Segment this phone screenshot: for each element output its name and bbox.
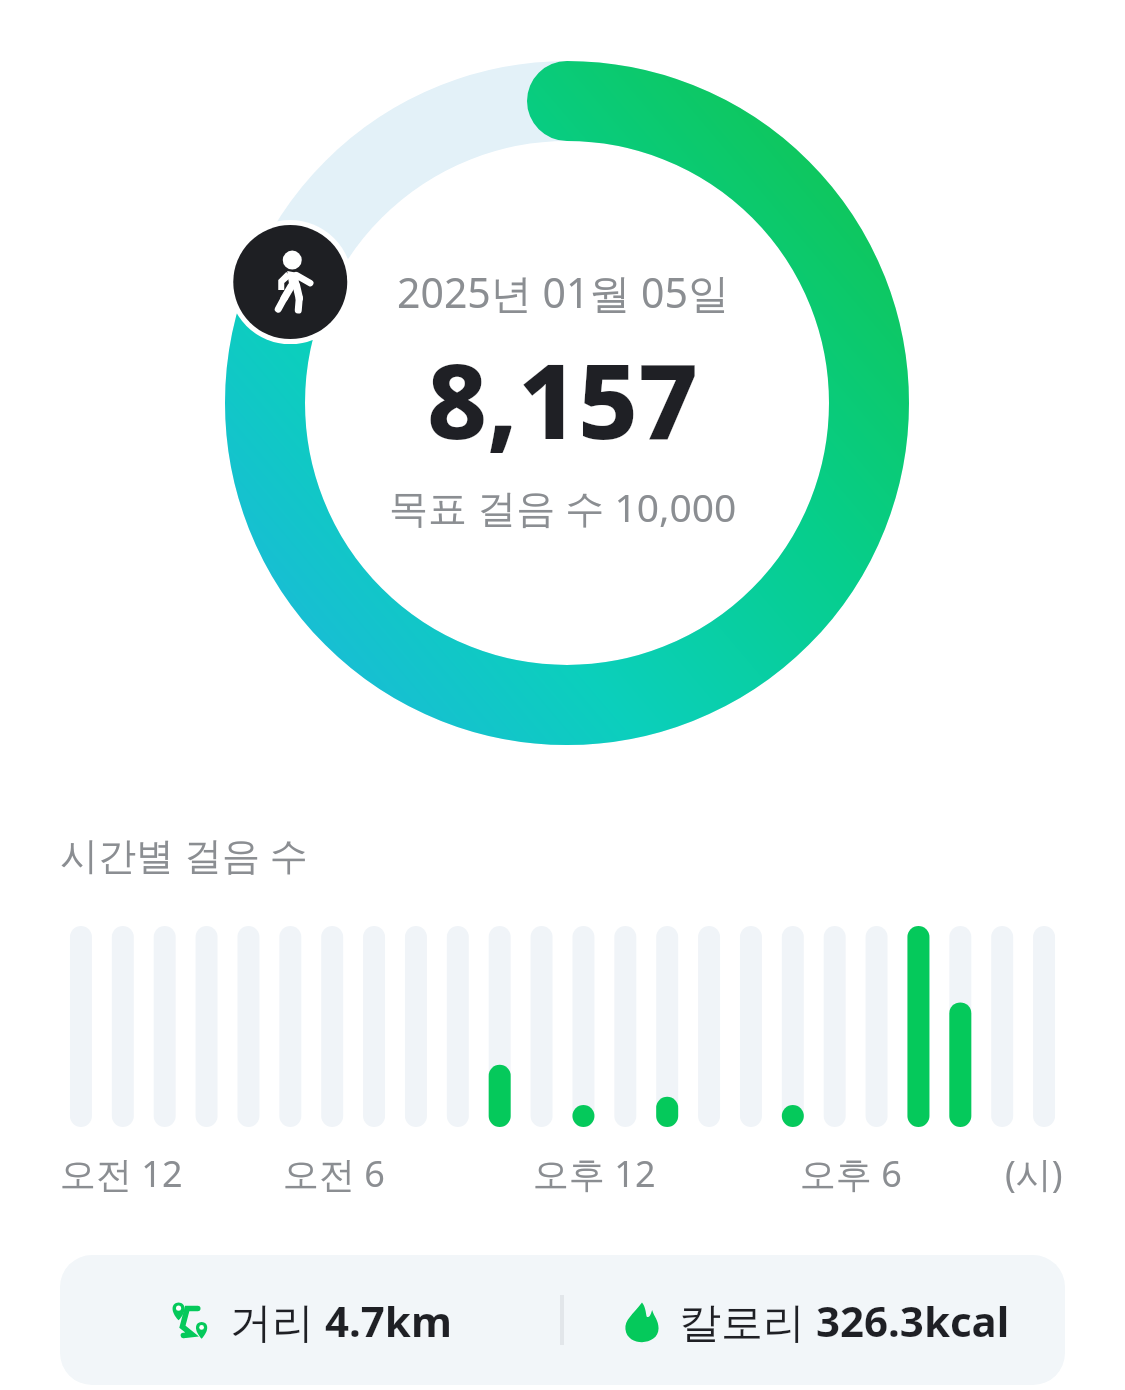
staticText: 시간별 걸음 수	[60, 828, 308, 880]
staticText: 4.7km	[325, 1292, 452, 1349]
staticText: 오전 6	[283, 1149, 385, 1198]
staticText: 오후 12	[533, 1149, 656, 1198]
button[interactable]: 거리	[60, 1255, 1065, 1385]
staticText: 거리	[230, 1292, 325, 1349]
staticText: 오전 12	[60, 1149, 183, 1198]
staticText: (시)	[1005, 1149, 1063, 1198]
staticText: 목표 걸음 수 10,000	[389, 480, 737, 533]
staticText: 326.3kcal	[816, 1292, 1010, 1349]
staticText: 칼로리	[679, 1292, 816, 1349]
staticText: 8,157	[427, 328, 699, 470]
staticText: 오후 6	[800, 1149, 902, 1198]
staticText: 2025년 01월 05일	[397, 264, 729, 320]
